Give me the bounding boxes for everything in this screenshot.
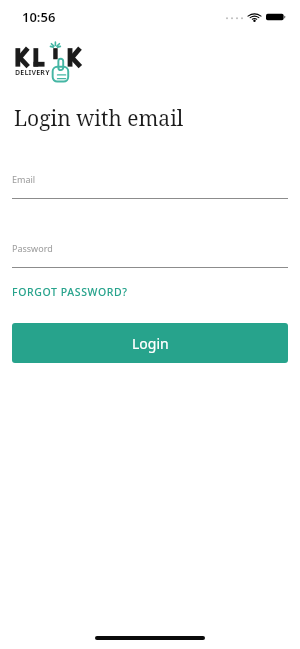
staticText: DELIVERY: [15, 68, 50, 78]
button[interactable]: FORGOT PASSWORD?: [6, 281, 134, 303]
staticText: Login with email: [14, 104, 184, 133]
staticText: Email: [12, 173, 36, 185]
staticText: Password: [12, 242, 53, 254]
staticText: 10:56: [22, 8, 56, 26]
staticText: Login: [132, 334, 169, 353]
button[interactable]: Password: [12, 242, 288, 268]
button[interactable]: Login: [12, 323, 288, 363]
button[interactable]: Email: [12, 173, 288, 199]
other: Klik Delivery logo: [14, 42, 86, 86]
staticText: FORGOT PASSWORD?: [12, 285, 128, 299]
